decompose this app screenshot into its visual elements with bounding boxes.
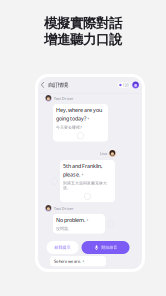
staticText: 120 bbox=[123, 82, 129, 88]
staticText: Lisa bbox=[100, 151, 107, 156]
staticText: please. bbox=[63, 171, 80, 178]
staticText: No problem. bbox=[56, 216, 85, 224]
button[interactable]: 開始錄音 bbox=[81, 241, 129, 254]
staticText: 今天要去哪裡? bbox=[56, 125, 82, 130]
button[interactable]: 給我提示 bbox=[46, 241, 78, 254]
staticText: 給我提示 bbox=[54, 245, 70, 250]
staticText: 開始錄音 bbox=[101, 245, 117, 250]
staticText: 模擬實際對話 bbox=[44, 15, 122, 31]
button[interactable]: Profile bbox=[130, 82, 142, 88]
staticText: 增進聽力口說 bbox=[44, 31, 122, 48]
staticText: 到第五大道與富蘭克林大道。 bbox=[63, 181, 107, 190]
staticText: 自訂情境 bbox=[48, 82, 68, 88]
staticText: Taxi Driver bbox=[54, 96, 74, 101]
staticText: Hey, where are you bbox=[56, 106, 102, 114]
staticText: going today? bbox=[56, 115, 86, 122]
button[interactable]: Back bbox=[38, 78, 48, 92]
staticText: So here we are. bbox=[54, 258, 81, 264]
staticText: 5th and Franklin, bbox=[63, 162, 102, 170]
staticText: 沒問題。 bbox=[56, 226, 72, 231]
staticText: Taxi Driver bbox=[54, 206, 74, 211]
